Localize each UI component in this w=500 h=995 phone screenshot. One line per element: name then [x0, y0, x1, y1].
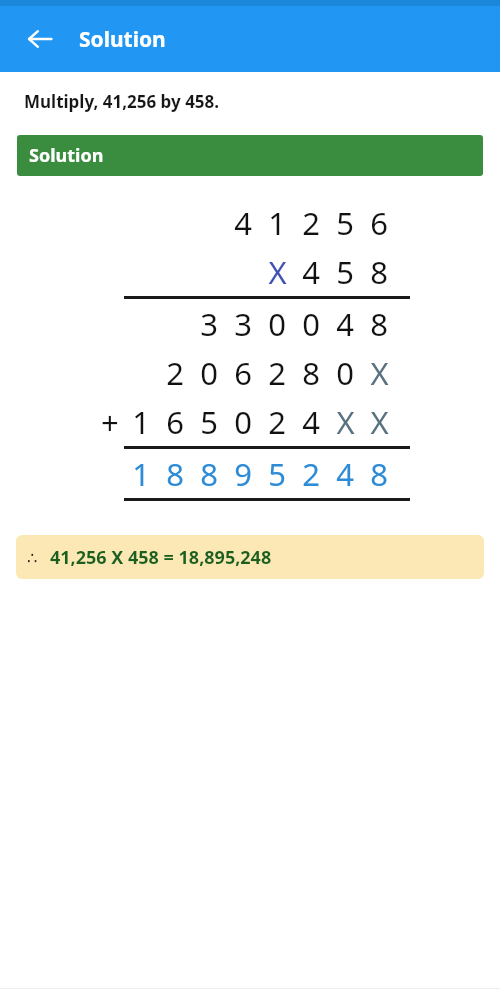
staticText: 0 — [200, 352, 218, 394]
staticText: 3 — [234, 303, 252, 345]
staticText: + — [101, 401, 119, 443]
staticText: 5 — [200, 401, 218, 443]
staticText: 2 — [268, 401, 286, 443]
staticText: 4 — [302, 251, 320, 293]
staticText: 0 — [268, 303, 286, 345]
staticText: 3 — [200, 303, 218, 345]
staticText: 9 — [234, 453, 252, 495]
staticText: 1 — [132, 401, 150, 443]
staticText: 2 — [166, 352, 184, 394]
staticText: 41,256 X 458 = 18,895,248 — [50, 545, 272, 570]
staticText: 8 — [370, 453, 388, 495]
staticText: 8 — [302, 352, 320, 394]
staticText: 0 — [302, 303, 320, 345]
staticText: 1 — [268, 202, 286, 244]
staticText: 6 — [166, 401, 184, 443]
staticText: 6 — [234, 352, 252, 394]
staticText: 8 — [370, 251, 388, 293]
staticText: Multiply, 41,256 by 458. — [24, 90, 220, 113]
staticText: 4 — [302, 401, 320, 443]
staticText: X — [370, 401, 389, 443]
staticText: 5 — [268, 453, 286, 495]
staticText: 5 — [336, 251, 354, 293]
button[interactable]: ∴ — [16, 535, 484, 579]
staticText: 8 — [166, 453, 184, 495]
staticText: 8 — [200, 453, 218, 495]
staticText: 2 — [302, 453, 320, 495]
staticText: 6 — [370, 202, 388, 244]
button[interactable]: Solution — [17, 135, 483, 176]
staticText: X — [370, 352, 389, 394]
staticText: ∴ — [27, 548, 38, 568]
staticText: Solution — [79, 25, 166, 54]
staticText: X — [336, 401, 355, 443]
staticText: 2 — [268, 352, 286, 394]
staticText: 0 — [336, 352, 354, 394]
staticText: 0 — [234, 401, 252, 443]
button[interactable]: Back — [12, 11, 68, 67]
staticText: 4 — [336, 303, 354, 345]
staticText: 2 — [302, 202, 320, 244]
staticText: 4 — [336, 453, 354, 495]
staticText: 1 — [132, 453, 150, 495]
staticText: 4 — [234, 202, 252, 244]
staticText: 8 — [370, 303, 388, 345]
staticText: Solution — [29, 143, 104, 168]
staticText: X — [268, 251, 287, 293]
staticText: 5 — [336, 202, 354, 244]
